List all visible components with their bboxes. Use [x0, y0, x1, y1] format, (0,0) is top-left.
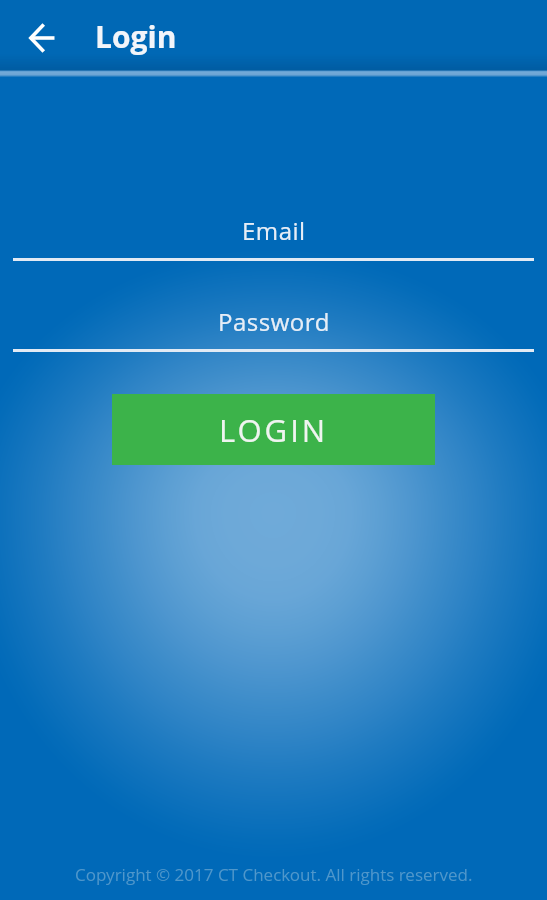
staticText: Password: [218, 305, 330, 338]
button[interactable]: Email: [0, 210, 547, 262]
button[interactable]: [16, 11, 68, 65]
staticText: Copyright © 2017 CT Checkout. All rights…: [75, 863, 473, 886]
button[interactable]: Password: [0, 301, 547, 353]
staticText: Login: [95, 16, 177, 57]
staticText: Email: [242, 214, 306, 247]
button[interactable]: LOGIN: [112, 394, 435, 465]
staticText: LOGIN: [219, 409, 329, 451]
